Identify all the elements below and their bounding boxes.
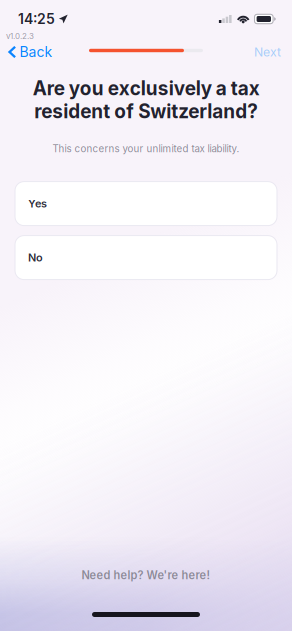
button[interactable]: Back	[0, 36, 53, 61]
staticText: v1.0.2.3	[6, 31, 34, 41]
staticText: This concerns your unlimited tax liabili…	[52, 143, 239, 155]
button[interactable]: Next	[254, 37, 292, 61]
staticText: No	[28, 251, 43, 264]
staticText: 14:25	[18, 10, 55, 27]
staticText: Yes	[28, 197, 47, 210]
staticText: Need help? We're here!	[81, 569, 210, 582]
button[interactable]: Yes	[15, 182, 277, 226]
staticText: Are you exclusively a tax resident of Sw…	[32, 77, 259, 123]
button[interactable]: Need help? We're here!	[71, 564, 220, 587]
button[interactable]: No	[15, 236, 277, 280]
staticText: Back	[20, 43, 53, 60]
staticText: Next	[254, 45, 281, 59]
